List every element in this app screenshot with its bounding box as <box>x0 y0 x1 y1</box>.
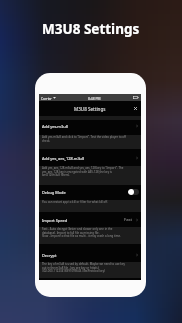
staticText: The key of m3u8 is used by default. Mayb… <box>42 262 125 272</box>
staticText: Import Speed <box>42 218 68 223</box>
staticText: Carrier <box>41 96 52 100</box>
staticText: 8:48 PM <box>88 96 101 100</box>
button[interactable]: Debug Mode <box>39 187 141 197</box>
button[interactable]: Close <box>132 105 139 112</box>
staticText: Decrypt <box>42 253 57 258</box>
staticText: Add yes_aes_128.m3u8 <box>42 156 85 161</box>
staticText: You can restart app to kill or filter fo… <box>42 200 108 204</box>
button[interactable]: Add yes.m3u8 <box>39 121 141 131</box>
staticText: M3U8 Settings <box>42 20 140 38</box>
staticText: Add yes_aes_128.m3u8 and yes_aes_128.key… <box>42 166 124 176</box>
button[interactable]: Decrypt <box>39 250 141 260</box>
staticText: Fast - Auto decrypt (faster and slower o… <box>42 227 121 237</box>
staticText: Debug Mode <box>42 190 66 195</box>
staticText: Fast <box>124 217 133 223</box>
staticText: Add yes.m3u8 and click to "Import". Test… <box>42 135 127 142</box>
staticText: Add yes.m3u8 <box>42 124 68 129</box>
button[interactable]: Debug Mode toggle <box>128 189 139 195</box>
button[interactable]: Import Speed <box>39 215 141 225</box>
button[interactable]: Add yes_aes_128.m3u8 <box>39 153 141 163</box>
staticText: M3U8 Settings <box>74 106 106 112</box>
